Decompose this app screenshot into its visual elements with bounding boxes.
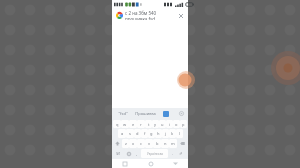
- staticText: j: [165, 131, 167, 136]
- staticText: r: [140, 122, 142, 127]
- button[interactable]: f: [141, 129, 148, 138]
- button[interactable]: e: [129, 120, 137, 128]
- staticText: o: [175, 122, 178, 127]
- staticText: f: [144, 131, 146, 136]
- staticText: i: [169, 122, 171, 127]
- staticText: y: [154, 122, 157, 127]
- button[interactable]: Keyboard key: [176, 149, 187, 158]
- staticText: g: [150, 131, 153, 136]
- staticText: b: [156, 141, 159, 146]
- staticText: q: [116, 122, 119, 127]
- staticText: k: [171, 131, 174, 136]
- button[interactable]: Прошивка: [133, 108, 158, 119]
- staticText: .: [172, 151, 174, 156]
- staticText: ,: [136, 151, 138, 156]
- button[interactable]: Clear search: [177, 12, 184, 19]
- button[interactable]: a: [118, 129, 126, 138]
- button[interactable]: Keyboard key: [124, 149, 133, 158]
- staticText: u: [161, 122, 164, 127]
- staticText: t: [148, 122, 150, 127]
- staticText: h: [157, 131, 160, 136]
- button[interactable]: p: [180, 120, 187, 128]
- button[interactable]: x: [129, 139, 137, 148]
- staticText: x: [132, 141, 135, 146]
- staticText: s: [129, 131, 131, 136]
- button[interactable]: r: [137, 120, 145, 128]
- staticText: e: [132, 122, 135, 127]
- staticText: a: [121, 131, 124, 136]
- staticText: "fsd": [118, 111, 128, 116]
- button[interactable]: n: [161, 139, 169, 148]
- button[interactable]: b: [153, 139, 161, 148]
- button[interactable]: m: [169, 139, 177, 148]
- button[interactable]: t: [145, 120, 152, 128]
- staticText: c: [140, 141, 142, 146]
- button[interactable]: Recent apps: [112, 159, 138, 168]
- button[interactable]: q: [113, 120, 121, 128]
- staticText: z: [125, 141, 127, 146]
- button[interactable]: z: [122, 139, 129, 148]
- button[interactable]: c: [137, 139, 145, 148]
- button[interactable]: j: [162, 129, 169, 138]
- button[interactable]: "fsd": [112, 108, 133, 119]
- button[interactable]: l: [176, 129, 183, 138]
- staticText: l: [179, 131, 181, 136]
- button[interactable]: d: [134, 129, 141, 138]
- button[interactable]: i: [166, 120, 173, 128]
- button[interactable]: u: [159, 120, 166, 128]
- staticText: Прошивка: [135, 111, 156, 116]
- button[interactable]: w: [121, 120, 129, 128]
- staticText: n: [164, 141, 167, 146]
- button[interactable]: Українська: [141, 149, 168, 158]
- button[interactable]: Keyboard settings: [174, 108, 188, 119]
- button[interactable]: v: [145, 139, 153, 148]
- button[interactable]: с 2 на 3бм 540 прошивка fsd: [114, 10, 186, 20]
- staticText: v: [148, 141, 151, 146]
- staticText: m: [171, 141, 175, 146]
- staticText: p: [182, 122, 185, 127]
- staticText: Українська: [147, 152, 163, 156]
- staticText: w: [123, 122, 127, 127]
- button[interactable]: Keyboard key: [133, 149, 140, 158]
- button[interactable]: Keyboard key: [113, 139, 122, 148]
- staticText: с 2 на 3бм 540 прошивка fsd: [125, 10, 177, 20]
- button[interactable]: g: [148, 129, 155, 138]
- button[interactable]: Keyboard key: [113, 149, 124, 158]
- button[interactable]: Clipboard: [158, 108, 174, 119]
- button[interactable]: Keyboard key: [177, 139, 187, 148]
- staticText: !#1: [116, 152, 121, 156]
- button[interactable]: Back: [163, 159, 188, 168]
- button[interactable]: h: [155, 129, 162, 138]
- button[interactable]: s: [126, 129, 134, 138]
- button[interactable]: Home: [138, 159, 163, 168]
- button[interactable]: k: [169, 129, 176, 138]
- button[interactable]: y: [152, 120, 159, 128]
- staticText: d: [136, 131, 139, 136]
- button[interactable]: o: [173, 120, 180, 128]
